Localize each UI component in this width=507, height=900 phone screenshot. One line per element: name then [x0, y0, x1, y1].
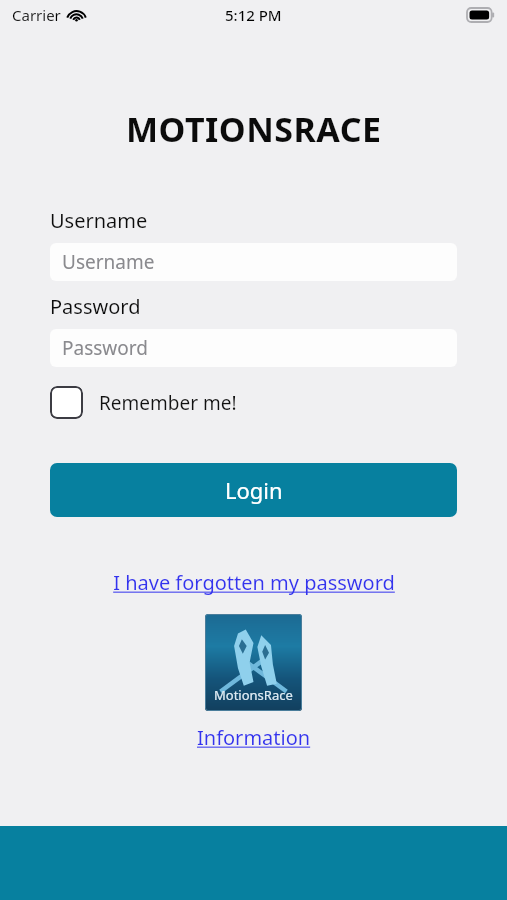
button[interactable]: Remember me!	[50, 386, 237, 419]
staticText: Login	[225, 475, 283, 505]
staticText: Carrier	[12, 5, 61, 25]
staticText: MOTIONSRACE	[126, 106, 382, 152]
staticText: Password	[50, 293, 141, 320]
button[interactable]: Information	[197, 724, 311, 751]
staticText: 5:12 PM	[225, 5, 282, 25]
button[interactable]: Username	[50, 243, 457, 281]
button[interactable]: Login	[50, 463, 457, 517]
staticText: Remember me!	[99, 390, 237, 416]
staticText: Username	[50, 207, 148, 234]
staticText: MotionsRace	[214, 686, 293, 704]
staticText: Password	[62, 335, 148, 361]
button[interactable]: MotionsRace logo	[205, 614, 302, 711]
button[interactable]: I have forgotten my password	[113, 569, 395, 596]
staticText: Username	[62, 249, 155, 275]
button[interactable]: Password	[50, 329, 457, 367]
